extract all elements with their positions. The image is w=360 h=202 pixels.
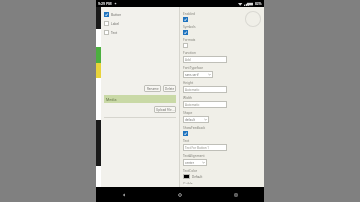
staticText: Text <box>111 31 118 35</box>
staticText: Symbols <box>183 25 196 29</box>
staticText: Label <box>111 22 120 26</box>
button[interactable]: Checked <box>183 131 188 136</box>
staticText: default <box>185 118 195 122</box>
staticText: center <box>185 161 195 165</box>
button[interactable]: default <box>183 116 209 123</box>
staticText: Automatic <box>185 88 200 92</box>
button[interactable]: Delete <box>163 85 176 92</box>
button[interactable]: Text For Button 1 <box>183 144 227 151</box>
staticText: Text <box>183 139 190 143</box>
staticText: Media <box>106 97 117 102</box>
staticText: Enabled <box>183 12 196 16</box>
button[interactable]: Automatic <box>183 86 227 93</box>
staticText: TextColor <box>183 169 198 173</box>
staticText: Function <box>183 51 196 55</box>
staticText: Width <box>183 96 192 100</box>
staticText: 9:29 PM <box>98 1 112 6</box>
staticText: Formats <box>183 38 196 42</box>
button[interactable]: Unchecked <box>104 30 109 35</box>
button[interactable]: Checked <box>104 12 109 17</box>
staticText: Visible <box>183 182 193 184</box>
button[interactable]: center <box>183 159 207 166</box>
button[interactable]: Pick text colour <box>183 174 190 179</box>
button[interactable]: Unchecked <box>183 43 188 48</box>
staticText: Default <box>192 175 203 179</box>
button[interactable]: Recent apps <box>208 187 264 202</box>
button[interactable]: Add <box>183 56 227 63</box>
button[interactable]: Back <box>96 187 152 202</box>
staticText: ShowFeedback <box>183 126 206 130</box>
button[interactable]: Rename <box>144 85 161 92</box>
staticText: Text For Button 1 <box>185 146 210 150</box>
staticText: Button <box>111 13 122 17</box>
button[interactable]: Checked <box>183 30 188 35</box>
button[interactable]: sans-serif <box>183 71 213 78</box>
staticText: 82% <box>255 2 262 6</box>
staticText: Rename <box>147 87 159 91</box>
button[interactable]: Upload File ... <box>154 106 176 113</box>
staticText: FontTypeface <box>183 66 204 70</box>
button[interactable]: Unchecked <box>104 21 109 26</box>
staticText: Delete <box>165 87 175 91</box>
staticText: Shape <box>183 111 193 115</box>
button[interactable]: Automatic <box>183 101 227 108</box>
staticText: Upload File ... <box>156 108 175 112</box>
button[interactable]: Home <box>152 187 208 202</box>
staticText: TextAlignment <box>183 154 205 158</box>
staticText: sans-serif <box>185 73 199 77</box>
staticText: Height <box>183 81 194 85</box>
button[interactable]: Media <box>104 95 176 103</box>
staticText: Automatic <box>185 103 200 107</box>
staticText: Add <box>185 58 191 62</box>
button[interactable]: Checked <box>183 17 188 22</box>
